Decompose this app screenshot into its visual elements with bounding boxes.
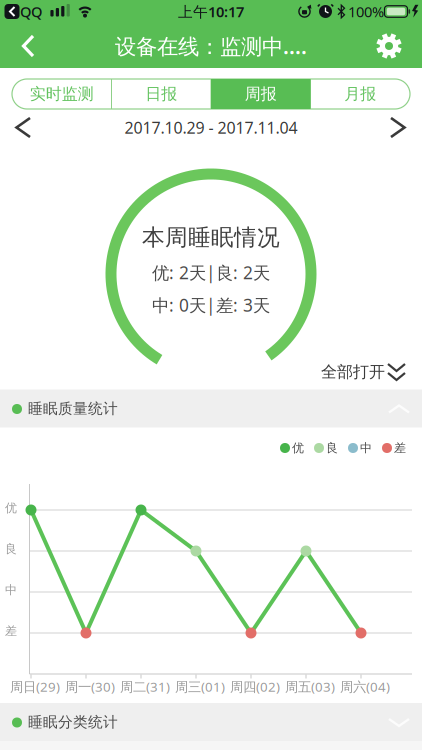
staticText: 差 [5, 624, 17, 638]
staticText: 周一(30) [65, 678, 115, 695]
button[interactable]: 实时监测 [12, 79, 111, 109]
staticText: 周六(04) [340, 678, 390, 695]
staticText: 100% [348, 2, 384, 21]
staticText: QQ [20, 2, 42, 21]
staticText: 全部打开 [321, 362, 385, 382]
staticText: 良 [326, 441, 338, 455]
staticText: 周报 [245, 84, 277, 104]
staticText: 周四(02) [230, 678, 280, 695]
button[interactable] [6, 109, 42, 145]
staticText: 优: 2天|良: 2天 [152, 261, 270, 284]
staticText: 周五(03) [285, 678, 335, 695]
button[interactable]: 月报 [310, 79, 410, 109]
button[interactable]: 日报 [111, 79, 211, 109]
button[interactable]: 睡眠分类统计 [0, 703, 422, 741]
staticText: 2017.10.29 - 2017.11.04 [124, 117, 297, 138]
staticText: 差 [394, 441, 406, 455]
staticText: 中 [360, 441, 372, 455]
staticText: 设备在线：监测中.... [115, 32, 307, 60]
button[interactable]: 周报 [211, 79, 310, 109]
staticText: 周日(29) [10, 678, 60, 695]
button[interactable] [10, 24, 46, 68]
button[interactable] [367, 24, 411, 68]
button[interactable]: 全部打开 [321, 357, 405, 387]
staticText: 睡眠质量统计 [28, 399, 118, 417]
button[interactable]: 睡眠质量统计 [0, 389, 422, 427]
staticText: 日报 [145, 84, 177, 104]
staticText: 实时监测 [30, 84, 94, 104]
staticText: 优 [292, 441, 304, 455]
staticText: 上午10:17 [178, 2, 244, 21]
staticText: 周三(01) [175, 678, 225, 695]
staticText: 月报 [344, 84, 376, 104]
staticText: 中: 0天|差: 3天 [152, 293, 270, 316]
staticText: 周二(31) [120, 678, 170, 695]
button[interactable] [379, 109, 415, 145]
staticText: 本周睡眠情况 [142, 224, 280, 251]
staticText: 睡眠分类统计 [28, 713, 118, 731]
staticText: 中 [5, 583, 17, 597]
staticText: 良 [5, 542, 17, 556]
staticText: 优 [5, 501, 17, 515]
